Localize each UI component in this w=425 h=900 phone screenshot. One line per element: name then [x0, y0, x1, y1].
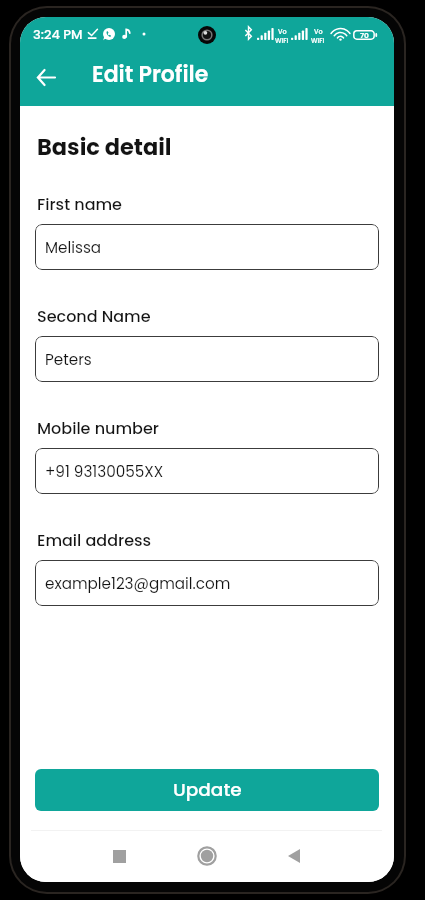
staticText: Basic detail	[37, 131, 172, 162]
staticText: Second Name	[37, 305, 151, 327]
staticText: Peters	[45, 349, 92, 370]
staticText: Update	[173, 777, 242, 803]
staticText: example123@gmail.com	[45, 573, 231, 594]
staticText: Edit Profile	[92, 59, 209, 90]
staticText: First name	[37, 193, 122, 215]
button[interactable]: Melissa	[35, 224, 379, 270]
staticText: +91 93130055XX	[45, 461, 164, 482]
button[interactable]: Back	[272, 834, 316, 878]
staticText: WiFi	[275, 36, 289, 45]
staticText: Vo	[314, 27, 323, 36]
button[interactable]: Recent apps	[97, 834, 141, 878]
button[interactable]: Update	[35, 769, 379, 811]
staticText: Melissa	[45, 237, 102, 258]
button[interactable]: Home	[185, 834, 229, 878]
staticText: 3:24 PM	[33, 25, 83, 43]
staticText: Email address	[37, 529, 152, 551]
button[interactable]: example123@gmail.com	[35, 560, 379, 606]
staticText: WiFi	[311, 36, 325, 45]
staticText: 70	[360, 30, 369, 40]
button[interactable]: +91 93130055XX	[35, 448, 379, 494]
button[interactable]: Back	[29, 49, 63, 106]
staticText: Vo	[278, 27, 287, 36]
button[interactable]: Peters	[35, 336, 379, 382]
staticText: Mobile number	[37, 417, 159, 439]
